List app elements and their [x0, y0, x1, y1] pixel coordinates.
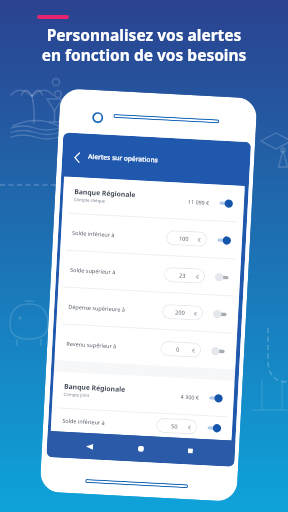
button[interactable]: Toggle off	[211, 346, 225, 356]
button[interactable]: Home	[138, 446, 144, 452]
button[interactable]: Solde inférieur à	[60, 213, 243, 259]
staticText: 50	[171, 422, 178, 431]
staticText: 200	[175, 308, 185, 317]
staticText: €	[196, 273, 199, 281]
button[interactable]: Toggle off	[213, 309, 227, 319]
staticText: €	[198, 236, 201, 244]
button[interactable]: 200	[162, 304, 203, 321]
button[interactable]: 23	[164, 267, 205, 284]
staticText: 11 099 €	[188, 198, 210, 206]
button[interactable]: Banque Régionale	[52, 371, 235, 417]
staticText: Personnalisez vos alertes en fonction de…	[14, 24, 274, 66]
staticText: Solde inférieur à	[62, 417, 156, 429]
button[interactable]: Toggle on	[208, 393, 223, 403]
button[interactable]: 100	[166, 230, 207, 247]
button[interactable]: Toggle on	[217, 235, 231, 245]
staticText: €	[188, 424, 191, 431]
staticText: Banque Régionale	[74, 187, 136, 199]
staticText: 23	[179, 272, 186, 280]
staticText: Solde inférieur à	[72, 229, 166, 241]
staticText: €	[192, 347, 195, 354]
staticText: 0	[176, 345, 180, 354]
staticText: Revenu supérieur à	[66, 340, 160, 352]
staticText: 4 300 €	[181, 393, 200, 401]
button[interactable]: Back	[74, 152, 80, 163]
staticText: Dépense supérieure à	[68, 303, 162, 315]
staticText: Banque Régionale	[64, 382, 126, 394]
button[interactable]: 0	[160, 341, 201, 358]
button[interactable]: 50	[156, 418, 197, 435]
button[interactable]: Back	[86, 443, 93, 450]
button[interactable]: Toggle off	[215, 272, 229, 282]
button[interactable]: Toggle on	[219, 199, 233, 208]
button[interactable]: Dépense supérieure à	[56, 287, 239, 333]
staticText: Compte joint	[63, 392, 90, 399]
staticText: Solde supérieur à	[70, 266, 164, 278]
staticText: Alertes sur opérations	[88, 152, 158, 164]
staticText: Compte chèque	[74, 197, 106, 205]
button[interactable]: Back	[61, 132, 251, 186]
button[interactable]: Solde inférieur à	[51, 408, 233, 440]
button[interactable]: Toggle on	[207, 423, 221, 433]
button[interactable]: Recents	[188, 448, 193, 454]
staticText: €	[194, 310, 197, 317]
button[interactable]: Solde supérieur à	[58, 250, 241, 296]
button[interactable]: Revenu supérieur à	[54, 324, 237, 370]
button[interactable]: Banque Régionale	[62, 176, 245, 222]
staticText: 100	[179, 234, 189, 243]
